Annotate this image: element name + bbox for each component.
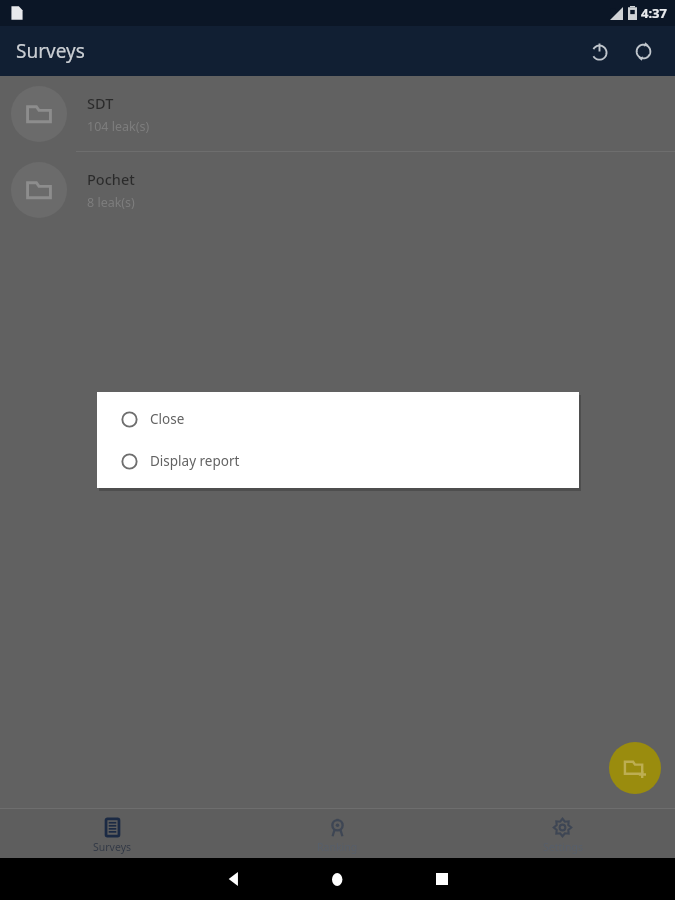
staticText: Settings: [543, 840, 583, 854]
staticText: 104 leak(s): [87, 118, 150, 135]
button[interactable]: Refresh: [623, 31, 663, 71]
button[interactable]: Pochet: [0, 152, 675, 227]
button[interactable]: Close: [97, 398, 579, 440]
staticText: 4:37: [641, 4, 667, 22]
button[interactable]: Ranking: [225, 813, 450, 854]
staticText: Close: [150, 410, 185, 428]
button[interactable]: Settings: [450, 813, 675, 854]
staticText: Display report: [150, 452, 240, 470]
button[interactable]: Back: [206, 858, 262, 900]
button[interactable]: Power: [579, 31, 619, 71]
staticText: Ranking: [317, 840, 358, 854]
staticText: Pochet: [87, 169, 135, 189]
staticText: SDT: [87, 93, 114, 113]
button[interactable]: Home: [310, 858, 366, 900]
staticText: Surveys: [16, 38, 85, 64]
staticText: Surveys: [93, 840, 132, 854]
button[interactable]: Display report: [97, 440, 579, 482]
button[interactable]: New survey: [609, 742, 661, 794]
button[interactable]: Surveys: [0, 813, 225, 854]
staticText: 8 leak(s): [87, 194, 135, 211]
button[interactable]: Recents: [414, 858, 470, 900]
button[interactable]: SDT: [0, 76, 675, 151]
